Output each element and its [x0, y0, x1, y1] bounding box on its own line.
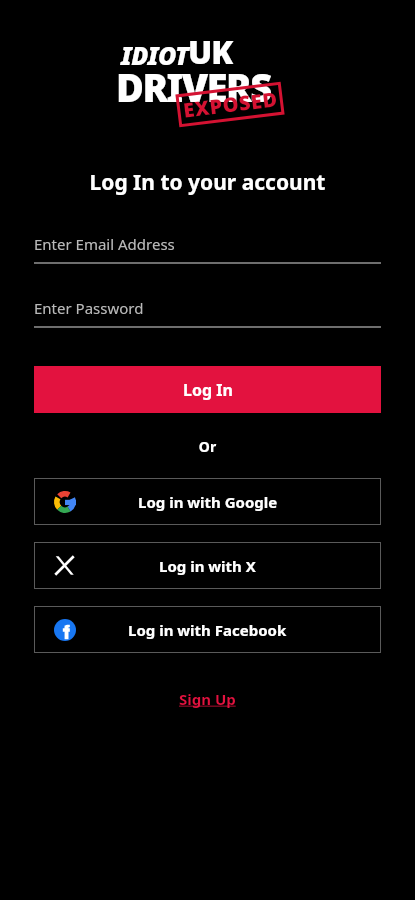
button[interactable]: Log In	[34, 366, 381, 413]
staticText: Enter Email Address	[34, 234, 175, 254]
staticText: UK	[188, 30, 233, 74]
staticText: IDIOT	[121, 38, 189, 72]
other: X	[54, 555, 75, 576]
button[interactable]: Enter Email Address	[34, 234, 381, 264]
staticText: DRIVERS	[116, 61, 271, 113]
button[interactable]: Facebook	[34, 606, 381, 653]
staticText: Log In	[183, 379, 233, 401]
staticText: Log in with X	[159, 556, 256, 576]
staticText: Log in with Facebook	[128, 620, 287, 640]
staticText: Or	[0, 437, 415, 456]
button[interactable]: Google	[34, 478, 381, 525]
other: Facebook	[54, 619, 76, 641]
button[interactable]: Sign Up	[169, 685, 246, 713]
other: Google	[54, 491, 76, 513]
button[interactable]: Enter Password	[34, 298, 381, 328]
button[interactable]: X	[34, 542, 381, 589]
staticText: Log In to your account	[0, 168, 415, 197]
staticText: EXPOSED	[182, 85, 279, 124]
staticText: Log in with Google	[138, 492, 278, 512]
staticText: Sign Up	[179, 689, 236, 709]
staticText: Enter Password	[34, 298, 144, 318]
